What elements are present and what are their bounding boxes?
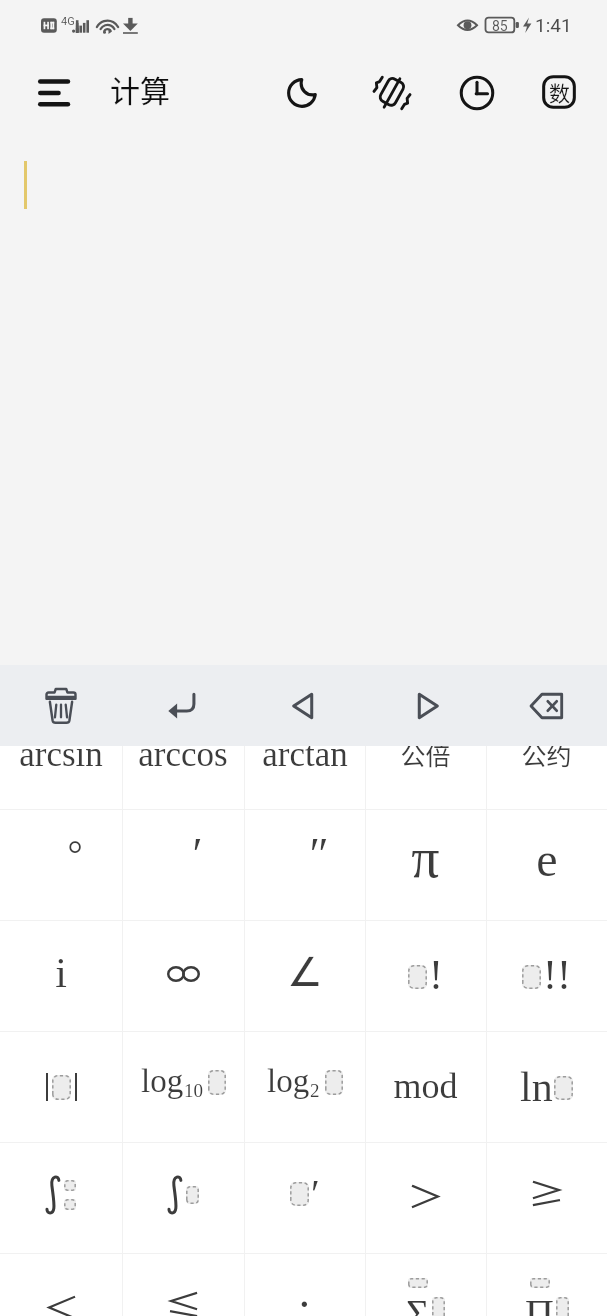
button[interactable]: Σ [365,1254,486,1316]
button[interactable]: e [486,810,607,920]
button[interactable]: ! [365,921,486,1031]
button[interactable] [122,1143,244,1253]
button[interactable]: log [122,1032,244,1142]
staticText: arccos [138,735,228,774]
staticText: ° [67,833,83,875]
staticText: 10 [184,1080,203,1101]
button[interactable]: 公约 [486,699,607,809]
staticText: 公倍 [400,736,451,772]
staticText: log [267,1063,310,1100]
staticText: ∠ [287,949,323,996]
staticText: !! [543,952,571,999]
staticText: 2 [310,1080,320,1101]
button[interactable] [365,1143,486,1253]
button[interactable] [486,1143,607,1253]
button[interactable]: Backspace [486,665,607,746]
staticText: arcsin [19,735,103,774]
button[interactable]: Π [486,1254,607,1316]
button[interactable]: Move right [365,665,486,746]
button[interactable]: Menu [28,66,80,118]
staticText: Σ [406,1291,430,1316]
button[interactable]: ′ [122,810,244,920]
staticText: arctan [262,735,348,774]
staticText: log [141,1063,184,1100]
staticText: e [536,833,558,886]
button[interactable]: !! [486,921,607,1031]
button[interactable]: Clear [0,665,122,746]
button[interactable]: 公倍 [365,699,486,809]
button[interactable]: : [244,1254,365,1316]
staticText: mod [393,1066,458,1106]
staticText: ln [520,1064,553,1111]
staticText: : [298,1282,311,1316]
staticText: 1:41 [535,14,572,36]
button[interactable]: ° [0,810,122,920]
staticText: ! [429,952,443,999]
button[interactable]: i [0,921,122,1031]
staticText: 公约 [521,736,572,772]
button[interactable]: ″ [244,810,365,920]
button[interactable]: log [244,1032,365,1142]
button[interactable] [0,1143,122,1253]
button[interactable]: arctan [244,699,365,809]
button[interactable]: Vibration [368,69,416,117]
button[interactable] [122,1254,244,1316]
button[interactable]: Dark mode [278,69,326,117]
staticText: ″ [309,829,329,880]
button[interactable]: ln [486,1032,607,1142]
button[interactable] [122,921,244,1031]
staticText: 4G [61,15,75,28]
staticText: π [411,827,440,889]
staticText: i [55,950,67,997]
button[interactable]: ′ [244,1143,365,1253]
button[interactable]: arccos [122,699,244,809]
button[interactable] [0,1032,122,1142]
button[interactable]: Enter [122,665,244,746]
staticText: 数 [549,77,570,107]
button[interactable]: ∠ [244,921,365,1031]
button[interactable]: Number base [535,68,583,116]
button[interactable]: Move left [244,665,365,746]
staticText: Π [525,1291,554,1316]
button[interactable]: mod [365,1032,486,1142]
button[interactable]: History [453,69,501,117]
staticText: 计算 [110,67,170,110]
staticText: ′ [311,1171,320,1215]
staticText: 85 [492,18,508,34]
staticText: ′ [192,829,203,880]
button[interactable]: π [365,810,486,920]
button[interactable]: arcsin [0,699,122,809]
button[interactable] [0,1254,122,1316]
